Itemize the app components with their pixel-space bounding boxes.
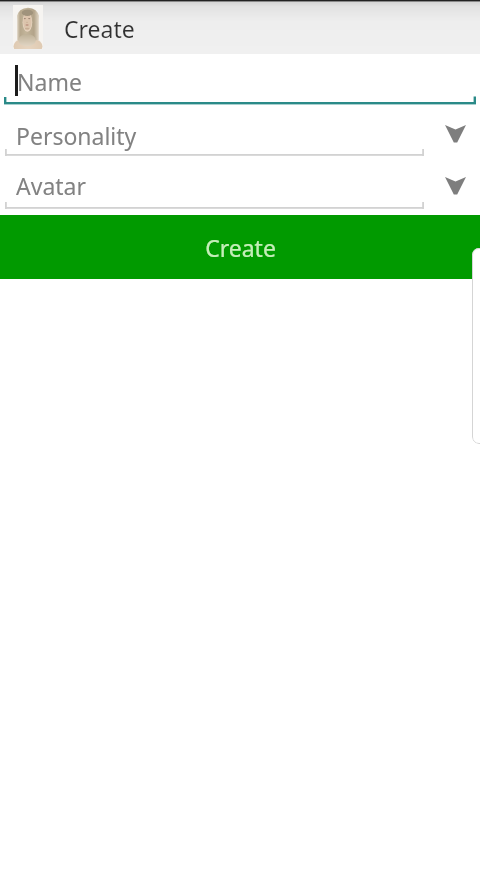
button[interactable]: Avatar	[13, 5, 43, 49]
button[interactable]: Create	[0, 215, 480, 279]
staticText: Name	[17, 66, 82, 97]
staticText: Avatar	[16, 170, 86, 201]
staticText: Create	[205, 232, 276, 263]
button[interactable]: Name	[0, 54, 480, 104]
staticText: Personality	[16, 120, 137, 151]
button[interactable]: Avatar	[0, 156, 480, 208]
staticText: Create	[64, 13, 135, 44]
button[interactable]: Options panel	[472, 248, 480, 444]
button[interactable]: Personality	[0, 104, 480, 156]
